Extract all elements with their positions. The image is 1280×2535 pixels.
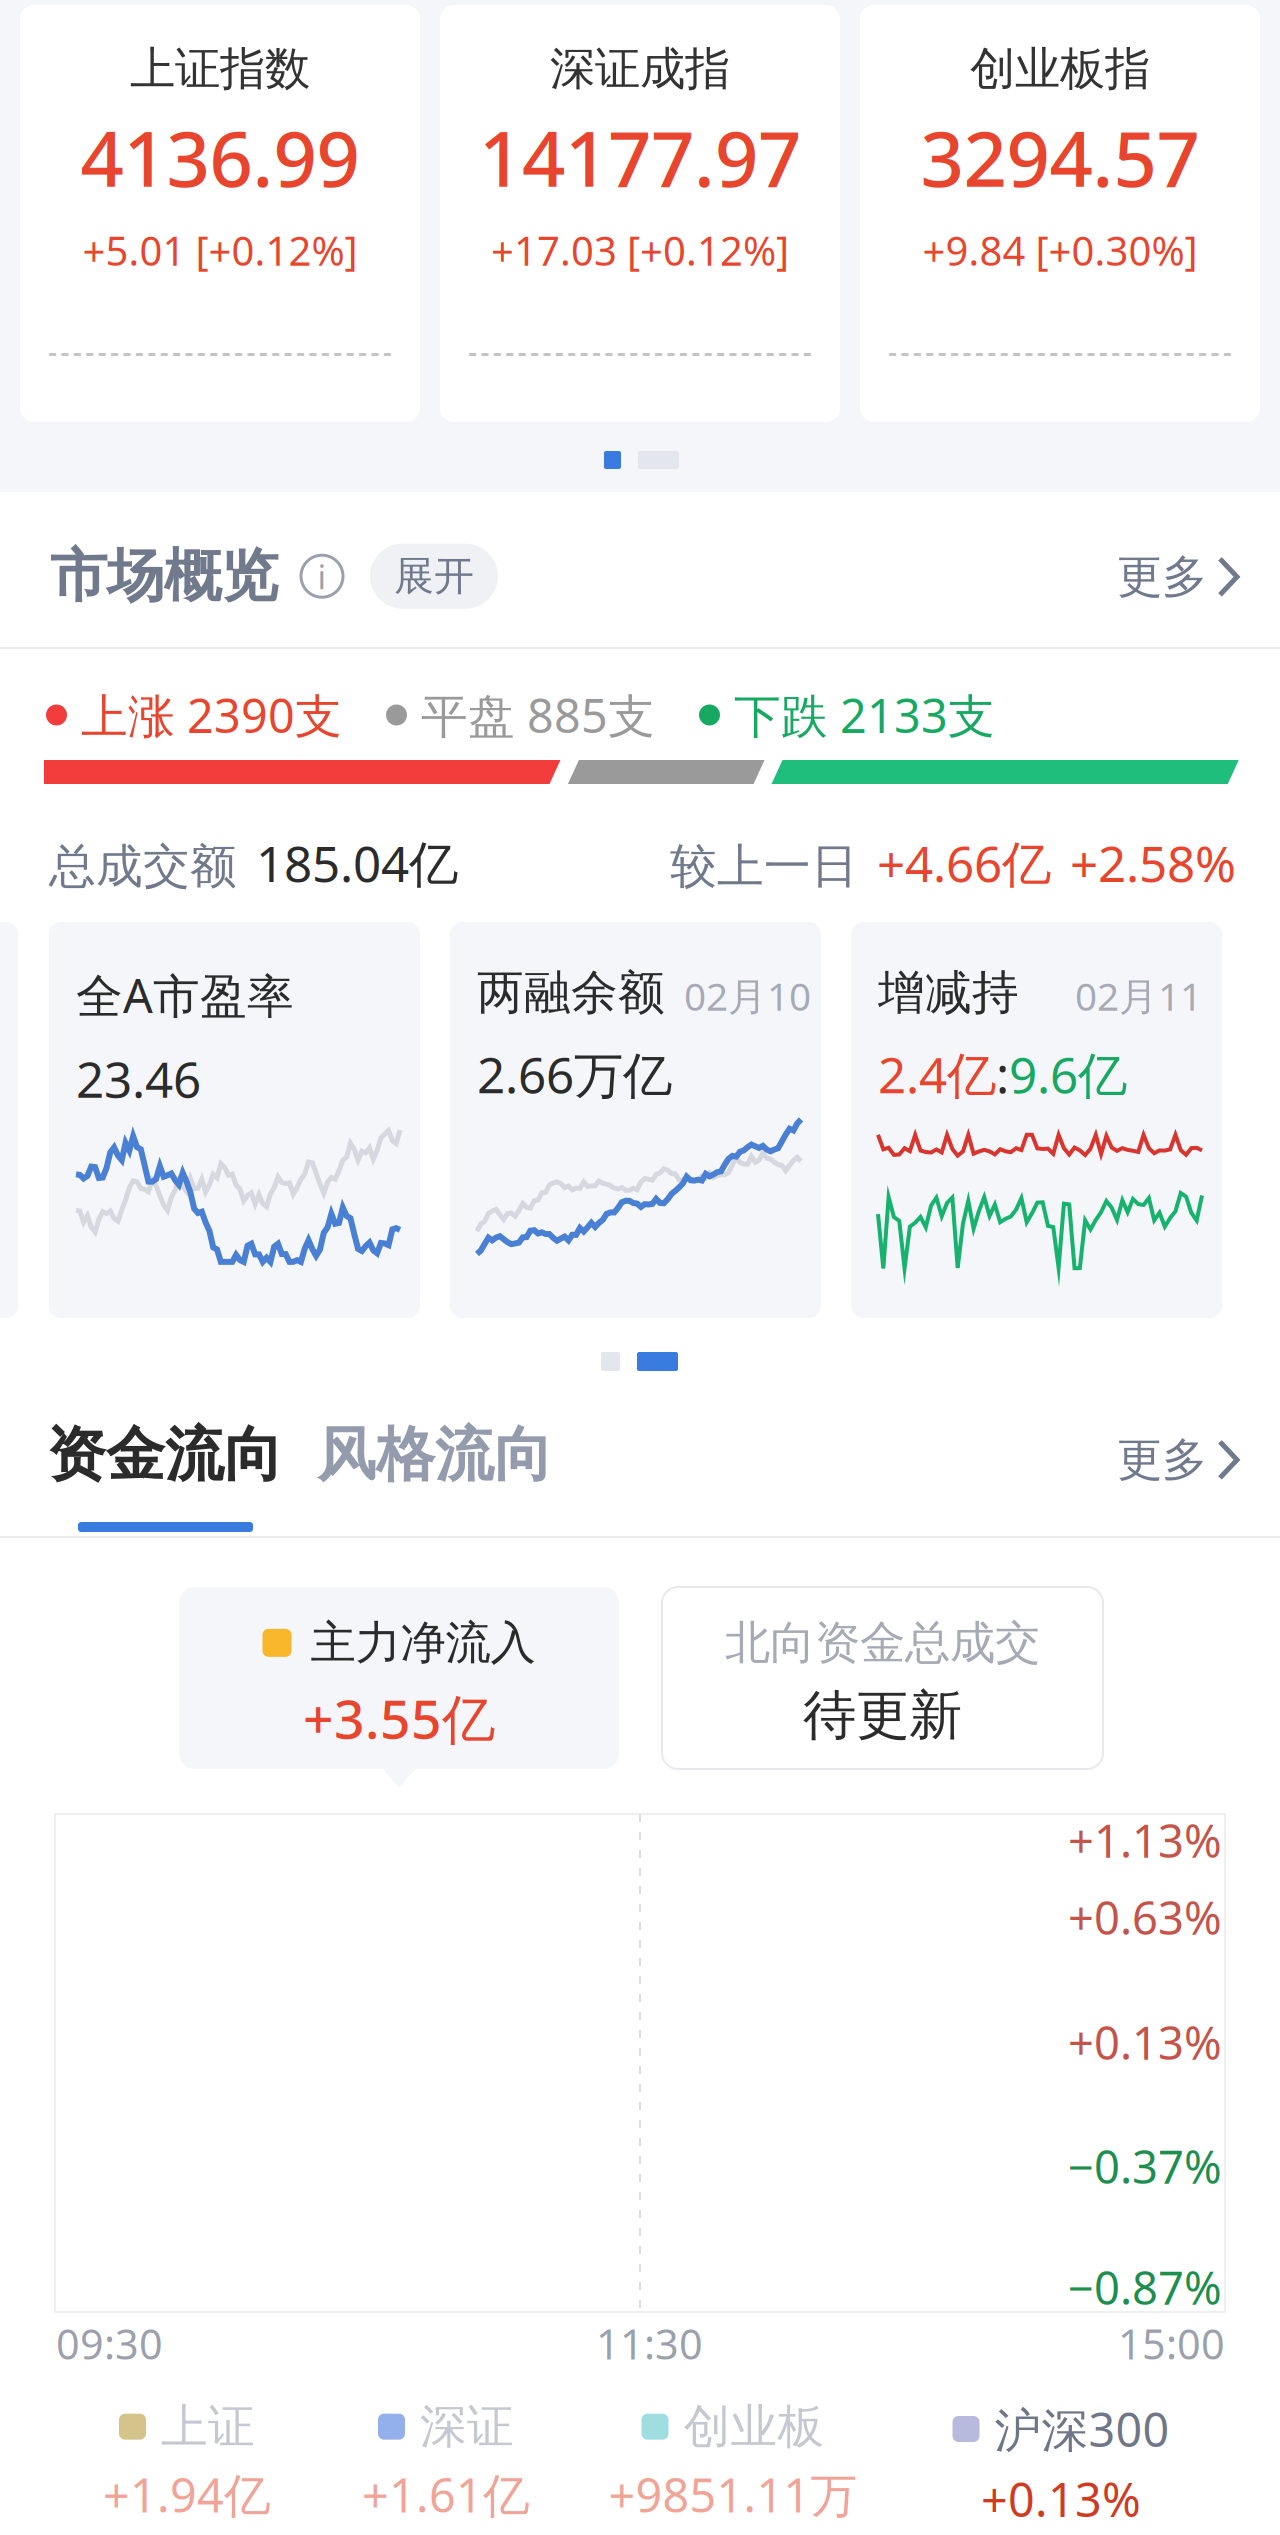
staticText: 上涨 2390支 bbox=[67, 684, 342, 746]
staticText: 风格流向 bbox=[317, 1419, 553, 1491]
staticText: 上证 bbox=[161, 2398, 255, 2455]
button[interactable]: 市场概览 bbox=[50, 541, 278, 611]
staticText: 11:30 bbox=[596, 2316, 703, 2371]
staticText: 下跌 2133支 bbox=[720, 684, 995, 746]
staticText: 185.04亿 bbox=[256, 830, 458, 895]
staticText: 增减持 bbox=[878, 964, 1019, 1021]
staticText: +0.13% bbox=[1068, 2012, 1222, 2072]
staticText: 09:30 bbox=[56, 2316, 163, 2371]
staticText: 深证 bbox=[420, 2398, 514, 2455]
staticText: +3.55亿 bbox=[303, 1683, 495, 1753]
staticText: +1.94亿 bbox=[103, 2463, 271, 2525]
button[interactable]: 沪深300 bbox=[901, 2398, 1221, 2530]
staticText: 沪深300 bbox=[994, 2398, 1169, 2460]
staticText: 创业板指 bbox=[970, 41, 1150, 97]
button[interactable]: 风格流向 bbox=[317, 1419, 553, 1491]
staticText: 创业板 bbox=[683, 2398, 824, 2455]
staticText: +1.61亿 bbox=[362, 2463, 530, 2525]
staticText: 全A市盈率 bbox=[76, 964, 294, 1026]
staticText: 总成交额 bbox=[49, 838, 237, 895]
staticText: : bbox=[996, 1041, 1009, 1107]
button[interactable]: 两融余额 bbox=[450, 922, 821, 1318]
staticText: 更多 bbox=[1117, 1432, 1207, 1488]
staticText: i bbox=[317, 554, 326, 598]
button[interactable]: 展开 bbox=[370, 544, 498, 609]
staticText: 02月11 bbox=[1075, 970, 1202, 1021]
button[interactable]: 创业板指 bbox=[860, 5, 1260, 422]
staticText: 两融余额 bbox=[477, 964, 665, 1021]
button[interactable]: 北向资金总成交 bbox=[662, 1587, 1103, 1769]
staticText: 上证指数 bbox=[130, 41, 310, 97]
staticText: 更多 bbox=[1117, 549, 1207, 605]
button[interactable]: 更多 bbox=[1117, 1432, 1240, 1488]
button[interactable]: 全A市盈率 bbox=[49, 922, 420, 1318]
staticText: 2.4亿 bbox=[878, 1041, 996, 1107]
staticText: +17.03 [+0.12%] bbox=[491, 224, 789, 277]
button[interactable]: 资金流向 bbox=[47, 1419, 283, 1491]
button[interactable]: 深证 bbox=[286, 2398, 606, 2525]
button[interactable]: 增减持 bbox=[851, 922, 1222, 1318]
staticText: 4136.99 bbox=[80, 107, 359, 208]
staticText: 北向资金总成交 bbox=[725, 1615, 1040, 1671]
button[interactable]: 更多 bbox=[1117, 549, 1240, 605]
staticText: +1.13% bbox=[1068, 1810, 1222, 1870]
staticText: +0.13% bbox=[981, 2468, 1141, 2530]
staticText: 待更新 bbox=[803, 1683, 962, 1748]
staticText: 市场概览 bbox=[50, 541, 278, 611]
staticText: +4.66亿 bbox=[877, 830, 1051, 895]
staticText: +0.63% bbox=[1068, 1887, 1222, 1947]
button[interactable]: 深证成指 bbox=[440, 5, 840, 422]
staticText: 资金流向 bbox=[47, 1419, 283, 1491]
staticText: 9.6亿 bbox=[1009, 1041, 1127, 1107]
staticText: 23.46 bbox=[76, 1046, 201, 1111]
staticText: 主力净流入 bbox=[310, 1615, 535, 1671]
staticText: 较上一日 bbox=[670, 838, 858, 895]
staticText: −0.37% bbox=[1068, 2136, 1222, 2196]
staticText: +9851.11万 bbox=[608, 2463, 857, 2525]
staticText: 3294.57 bbox=[920, 107, 1199, 208]
staticText: −0.87% bbox=[1068, 2257, 1222, 2317]
staticText: 2.66万亿 bbox=[477, 1041, 672, 1107]
button[interactable]: 主力净流入 bbox=[179, 1587, 619, 1769]
staticText: 平盘 885支 bbox=[407, 684, 655, 746]
staticText: 展开 bbox=[394, 552, 474, 601]
staticText: 深证成指 bbox=[550, 41, 730, 97]
staticText: 14177.97 bbox=[479, 107, 801, 208]
staticText: +5.01 [+0.12%] bbox=[82, 224, 357, 277]
button[interactable]: 上证指数 bbox=[20, 5, 420, 422]
button[interactable]: 上证 bbox=[27, 2398, 347, 2525]
staticText: 15:00 bbox=[1118, 2316, 1225, 2371]
staticText: 02月10 bbox=[684, 970, 811, 1021]
staticText: +2.58% bbox=[1070, 830, 1236, 895]
button[interactable]: 创业板 bbox=[573, 2398, 893, 2525]
staticText: +9.84 [+0.30%] bbox=[922, 224, 1197, 277]
